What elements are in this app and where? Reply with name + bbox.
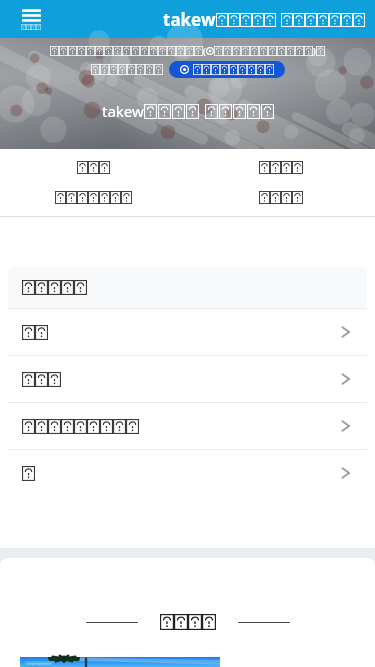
staticText: takew <box>102 101 144 121</box>
button[interactable]: takew <box>163 8 365 31</box>
button[interactable] <box>8 356 367 402</box>
staticText: ) <box>313 45 316 57</box>
button[interactable] <box>8 309 367 355</box>
button[interactable]: Menu <box>17 7 45 32</box>
staticText: takew <box>163 8 216 31</box>
button[interactable] <box>0 191 187 204</box>
button[interactable] <box>187 161 375 174</box>
button[interactable] <box>8 403 367 449</box>
button[interactable] <box>169 61 285 78</box>
button[interactable] <box>187 191 375 204</box>
staticText: ( <box>203 45 206 57</box>
button[interactable] <box>8 450 367 496</box>
button[interactable] <box>15 652 225 667</box>
button[interactable] <box>0 161 187 174</box>
